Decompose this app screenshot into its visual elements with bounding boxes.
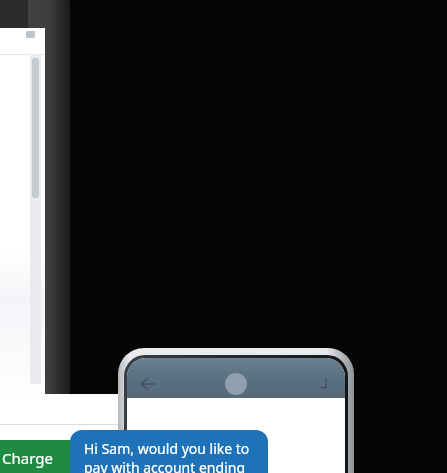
- button[interactable]: Contact avatar: [225, 373, 247, 395]
- staticText: Hi Sam, would you like to pay with accou…: [84, 439, 250, 473]
- button[interactable]: More options: [311, 372, 335, 396]
- button[interactable]: Back: [135, 371, 161, 397]
- button[interactable]: Hi Sam, would you like to pay with accou…: [70, 430, 268, 473]
- button[interactable]: Charge: [0, 440, 78, 473]
- staticText: Charge: [2, 448, 53, 468]
